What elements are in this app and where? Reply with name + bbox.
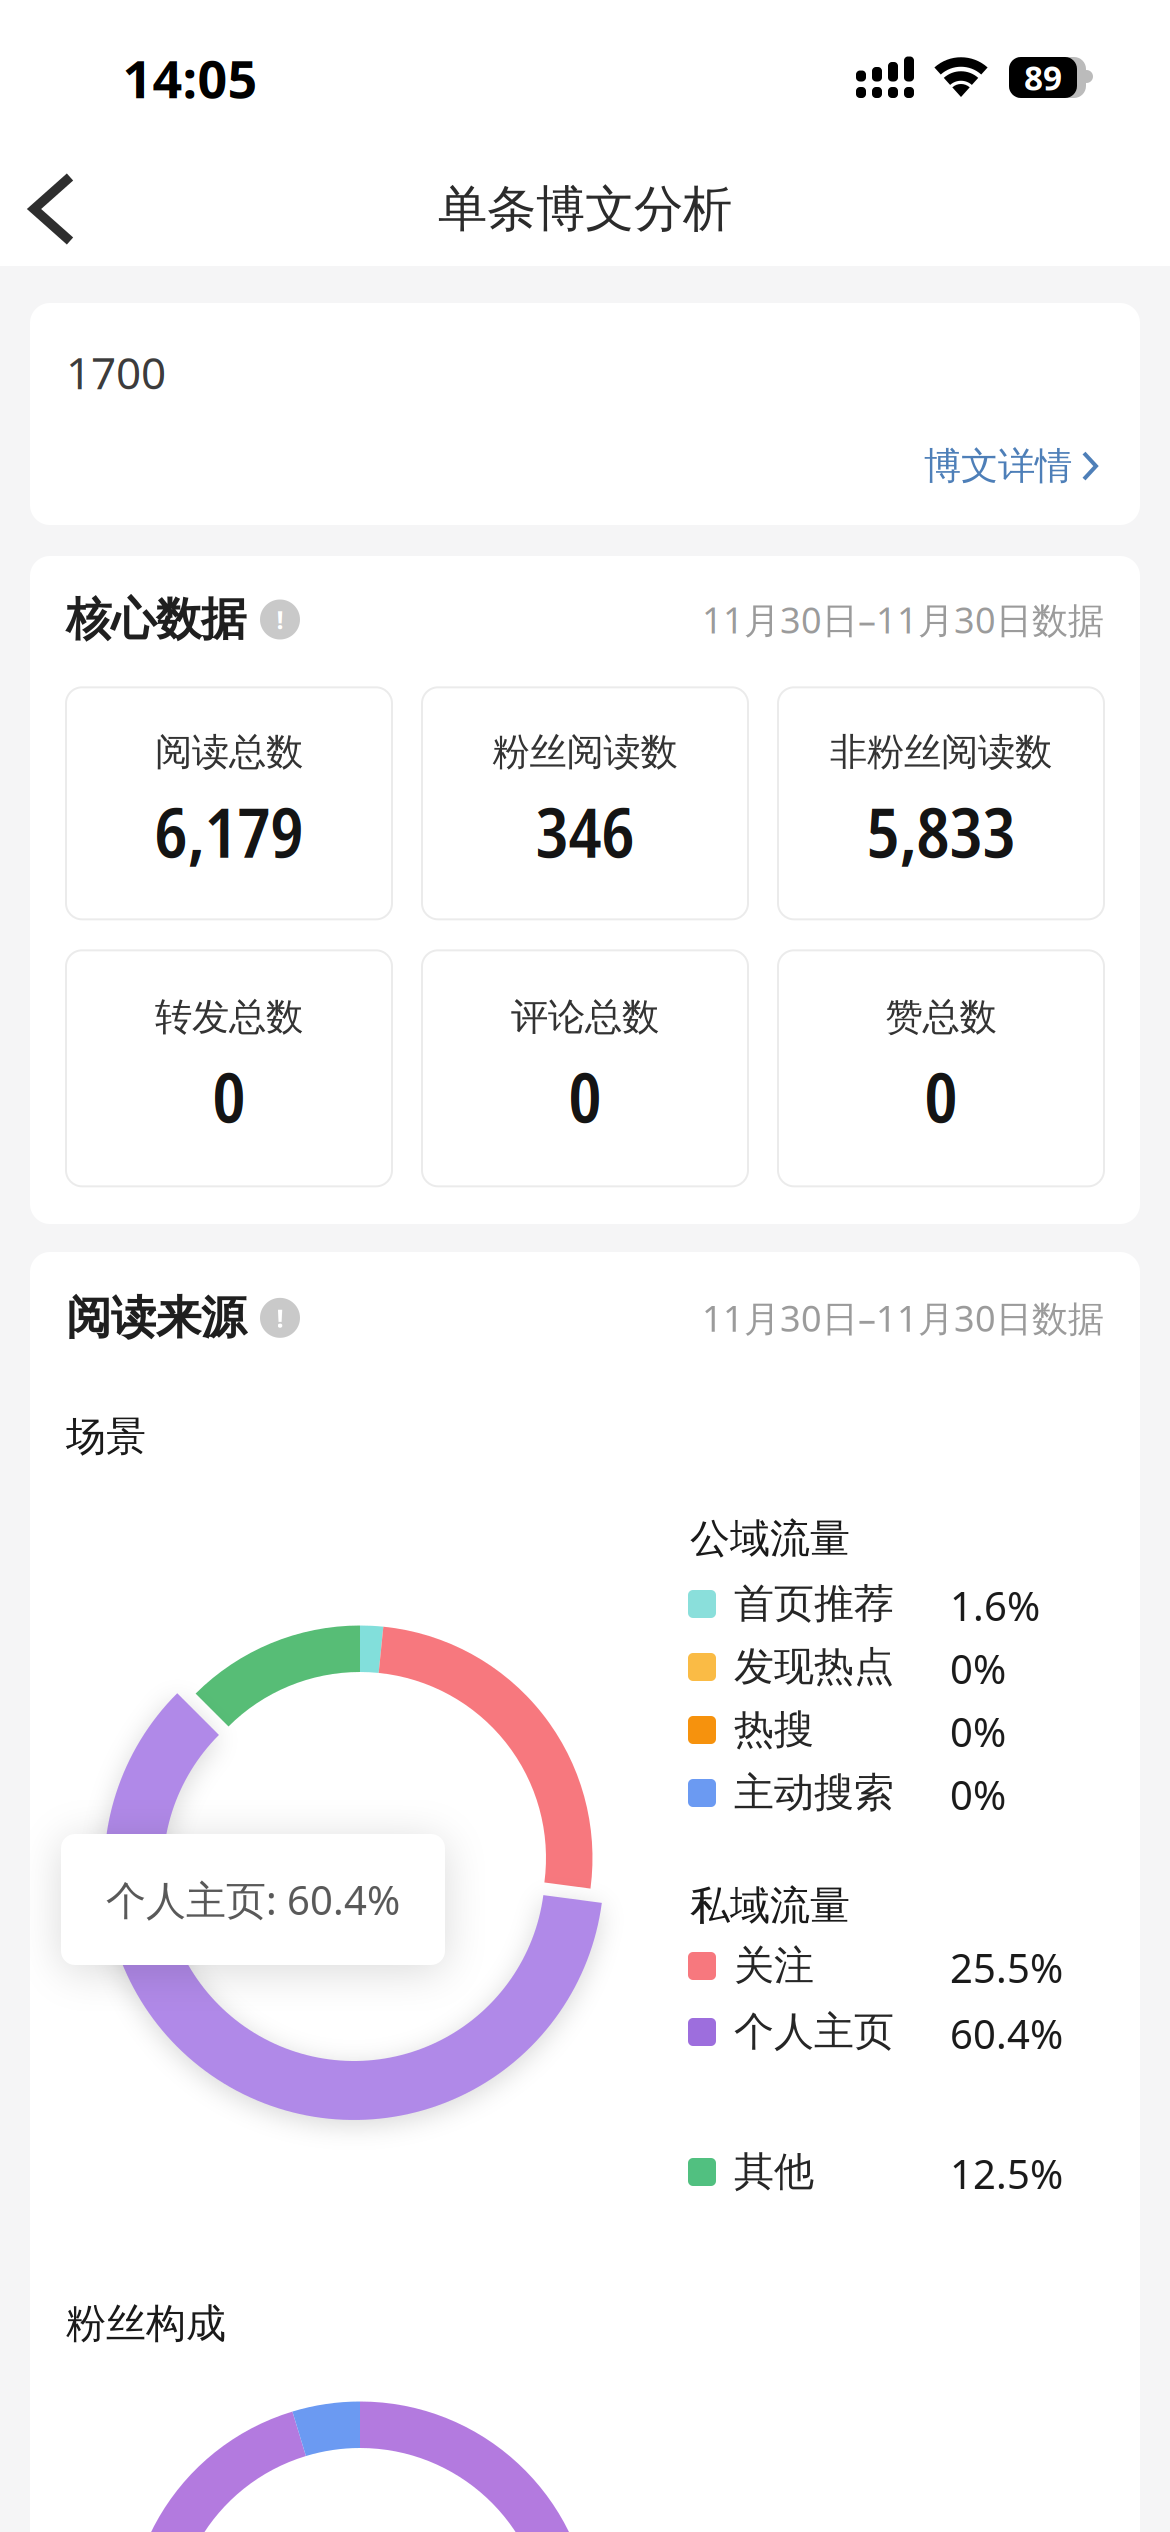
staticText: 0% [950, 1642, 1006, 1695]
staticText: 0% [950, 1705, 1006, 1758]
button[interactable]: 说明 [260, 599, 300, 639]
staticText: 关注 [734, 1941, 814, 1990]
staticText: 11月30日–11月30日数据 [702, 1294, 1104, 1342]
staticText: 60.4% [950, 2007, 1063, 2060]
staticText: 14:05 [122, 43, 257, 113]
staticText: 6,179 [154, 785, 303, 878]
staticText: 博文详情 [924, 443, 1072, 489]
staticText: 1.6% [950, 1579, 1040, 1632]
staticText: 89 [1024, 55, 1062, 100]
staticText: 0% [950, 1768, 1006, 1821]
staticText: 1700 [66, 343, 166, 401]
staticText: 赞总数 [885, 994, 996, 1040]
staticText: 346 [535, 785, 634, 878]
staticText: 主动搜索 [734, 1768, 894, 1817]
staticText: 25.5% [950, 1941, 1063, 1994]
staticText: 公域流量 [690, 1514, 850, 1563]
staticText: 0 [924, 1050, 957, 1143]
staticText: 0 [212, 1050, 245, 1143]
staticText: 5,833 [866, 785, 1015, 878]
staticText: 首页推荐 [734, 1579, 894, 1628]
button[interactable]: Back [20, 167, 110, 251]
staticText: 0 [568, 1050, 601, 1143]
staticText: 非粉丝阅读数 [830, 729, 1052, 775]
staticText: 评论总数 [511, 994, 659, 1040]
staticText: 核心数据 [66, 592, 246, 647]
staticText: ! [276, 1301, 283, 1335]
staticText: 私域流量 [690, 1881, 850, 1930]
staticText: 场景 [66, 1412, 146, 1461]
staticText: 阅读来源 [66, 1290, 246, 1346]
staticText: 单条博文分析 [438, 179, 732, 239]
staticText: 其他 [734, 2147, 814, 2196]
staticText: 11月30日–11月30日数据 [702, 596, 1104, 643]
staticText: 转发总数 [155, 994, 303, 1040]
staticText: ! [276, 603, 283, 636]
staticText: 12.5% [950, 2147, 1063, 2200]
staticText: 热搜 [734, 1705, 814, 1754]
staticText: 个人主页: 60.4% [106, 1873, 400, 1926]
staticText: 粉丝构成 [66, 2299, 226, 2348]
staticText: 粉丝阅读数 [492, 729, 677, 775]
button[interactable]: 博文详情 [924, 443, 1100, 489]
staticText: 阅读总数 [155, 729, 303, 775]
button[interactable]: 说明 [260, 1298, 300, 1338]
staticText: 个人主页 [734, 2007, 894, 2056]
staticText: 发现热点 [734, 1642, 894, 1691]
